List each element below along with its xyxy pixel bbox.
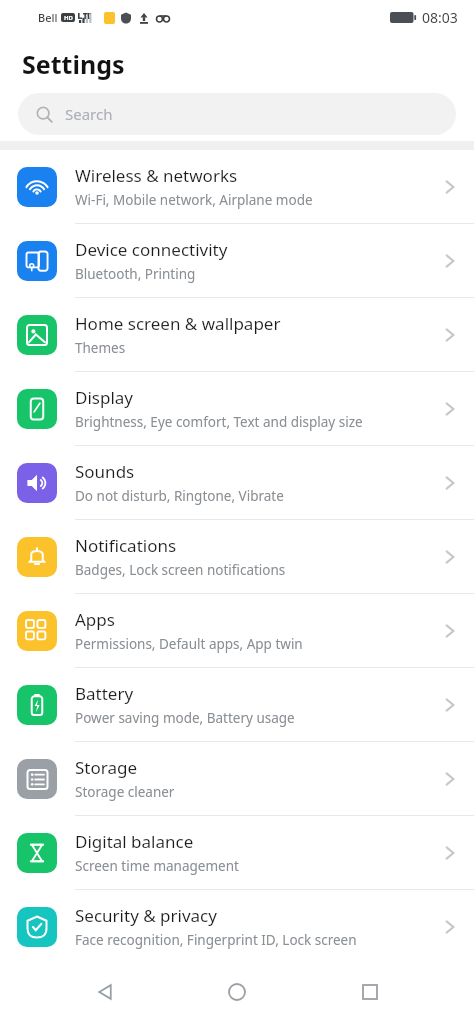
staticText: Device connectivity [75,238,228,261]
staticText: Bluetooth, Printing [75,265,196,283]
button[interactable]: Home screen & wallpaper [0,298,474,372]
staticText: Wi-Fi, Mobile network, Airplane mode [75,191,313,209]
button[interactable]: Storage [0,742,474,816]
staticText: HD [64,14,73,22]
staticText: Bell [38,10,58,25]
staticText: Settings [22,47,125,81]
staticText: Security & privacy [75,904,217,927]
staticText: Wireless & networks [75,164,238,187]
button[interactable]: Display [0,372,474,446]
staticText: Digital balance [75,830,194,853]
staticText: Permissions, Default apps, App twin [75,635,303,653]
staticText: Storage [75,756,138,779]
staticText: Display [75,386,133,409]
staticText: Home screen & wallpaper [75,312,281,335]
staticText: Search [65,104,113,124]
button[interactable]: Device connectivity [0,224,474,298]
staticText: Face recognition, Fingerprint ID, Lock s… [75,931,357,949]
button[interactable]: Recents [342,969,398,1014]
button[interactable]: Wireless & networks [0,150,474,224]
staticText: Battery [75,682,134,705]
staticText: Notifications [75,534,177,557]
button[interactable]: Digital balance [0,816,474,890]
staticText: Brightness, Eye comfort, Text and displa… [75,413,363,431]
staticText: Do not disturb, Ringtone, Vibrate [75,487,284,505]
button[interactable]: Apps [0,594,474,668]
staticText: Themes [75,339,126,357]
staticText: Screen time management [75,857,239,875]
staticText: Power saving mode, Battery usage [75,709,295,727]
button[interactable]: Search [18,93,456,135]
staticText: Sounds [75,460,135,483]
staticText: Storage cleaner [75,783,175,801]
button[interactable]: Back [77,969,133,1014]
staticText: Apps [75,608,115,631]
button[interactable]: Sounds [0,446,474,520]
button[interactable]: Security & privacy [0,890,474,963]
staticText: 08:03 [422,8,458,27]
button[interactable]: Home [209,969,265,1014]
button[interactable]: Battery [0,668,474,742]
staticText: Badges, Lock screen notifications [75,561,286,579]
button[interactable]: Notifications [0,520,474,594]
